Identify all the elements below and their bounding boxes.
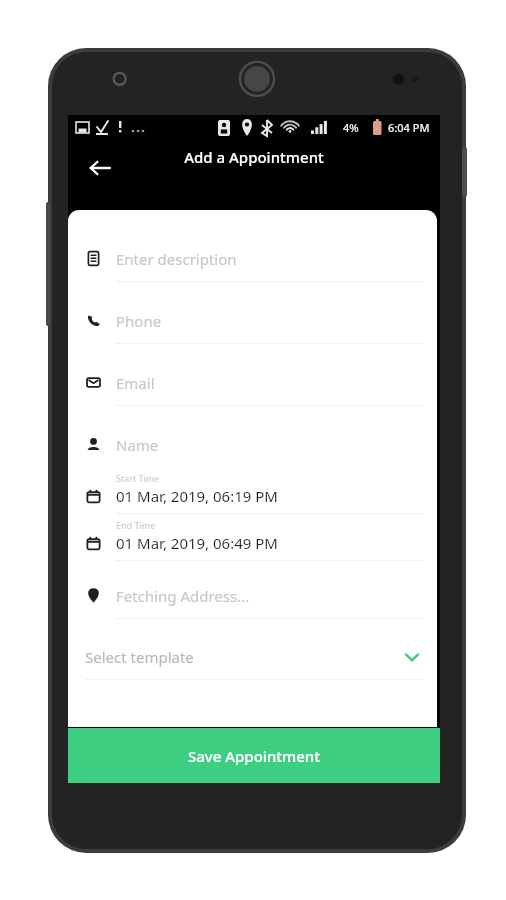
staticText: Email bbox=[116, 373, 155, 393]
button[interactable]: Start Time bbox=[68, 467, 437, 514]
button[interactable]: Name bbox=[68, 422, 437, 467]
staticText: 4% bbox=[343, 120, 359, 135]
staticText: Save Appointment bbox=[188, 746, 321, 766]
staticText: Name bbox=[116, 435, 159, 455]
button[interactable]: Save Appointment bbox=[68, 728, 440, 783]
staticText: 01 Mar, 2019, 06:49 PM bbox=[116, 533, 278, 553]
button[interactable]: Select template bbox=[68, 635, 437, 679]
staticText: Add a Appointment bbox=[184, 147, 324, 167]
button[interactable]: Fetching Address... bbox=[68, 573, 437, 618]
staticText: Enter description bbox=[116, 249, 237, 269]
staticText: Phone bbox=[116, 311, 162, 331]
staticText: 01 Mar, 2019, 06:19 PM bbox=[116, 486, 278, 506]
button[interactable]: Back bbox=[76, 144, 124, 192]
staticText: 6:04 PM bbox=[388, 120, 430, 135]
staticText: End Time bbox=[116, 519, 156, 531]
staticText: Start Time bbox=[116, 472, 160, 484]
button[interactable]: Phone bbox=[68, 298, 437, 343]
button[interactable]: Email bbox=[68, 360, 437, 405]
button[interactable]: Enter description bbox=[68, 236, 437, 281]
staticText: Fetching Address... bbox=[116, 586, 250, 606]
staticText: Select template bbox=[85, 647, 194, 667]
button[interactable]: End Time bbox=[68, 514, 437, 561]
